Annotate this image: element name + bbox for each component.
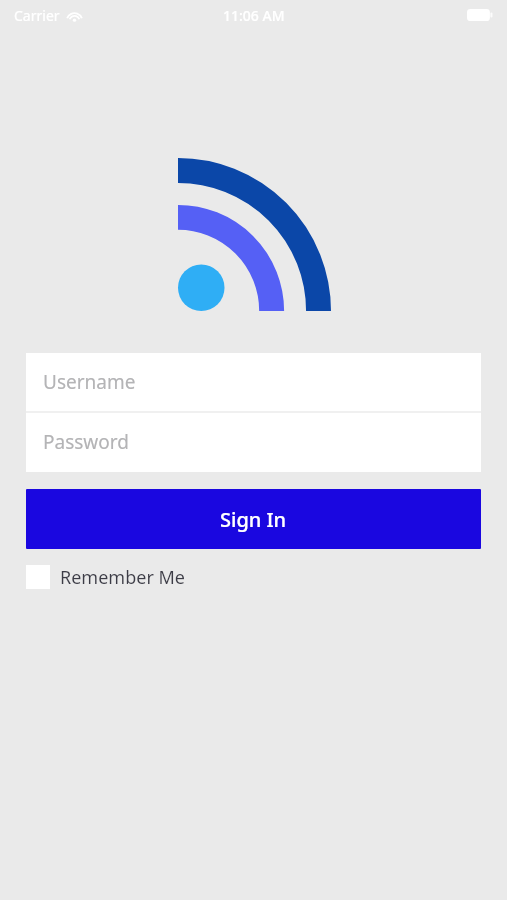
staticText: Sign In [220, 506, 287, 533]
button[interactable]: Sign In [26, 489, 481, 549]
button[interactable]: Password [26, 413, 481, 471]
staticText: 11:06 AM [223, 6, 285, 25]
staticText: Carrier [14, 6, 60, 25]
button[interactable]: Username [26, 353, 481, 411]
staticText: Password [43, 429, 129, 455]
staticText: Username [43, 369, 136, 395]
button[interactable]: Remember Me checkbox [26, 563, 193, 591]
staticText: Remember Me [60, 565, 185, 590]
